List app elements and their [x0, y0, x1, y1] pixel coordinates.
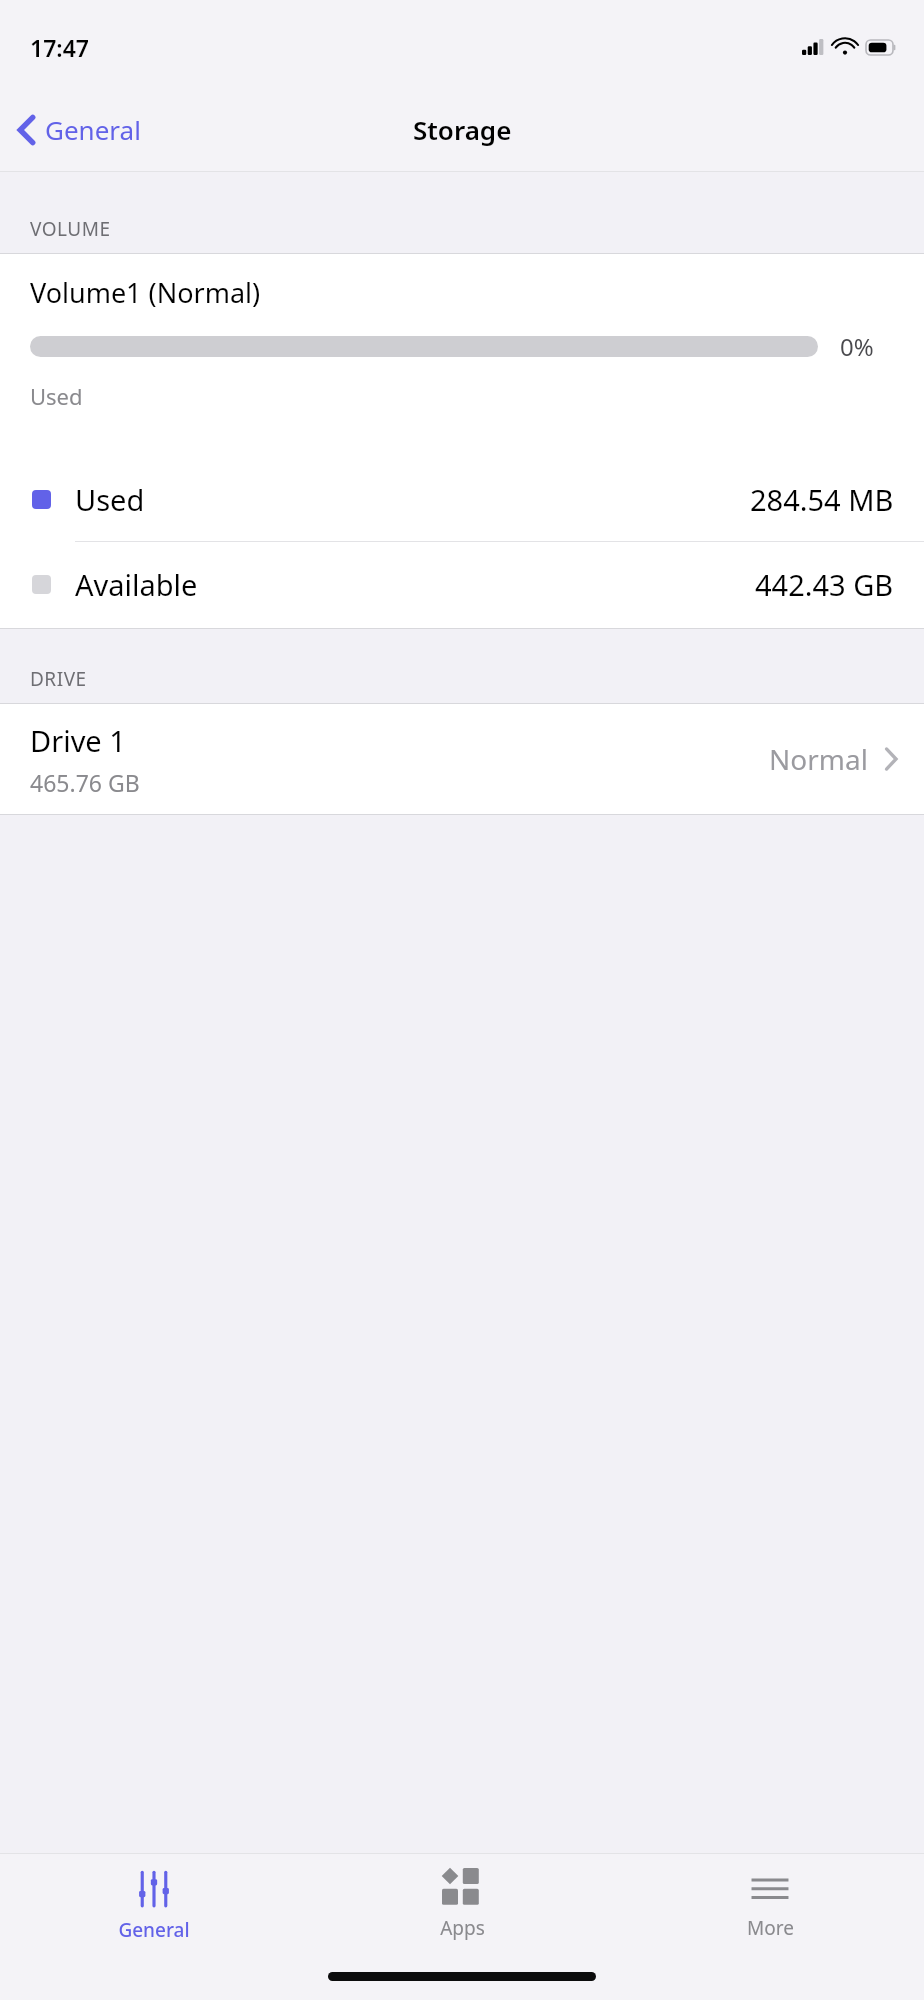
staticText: 465.76 GB: [30, 767, 140, 798]
staticText: Available: [75, 565, 198, 604]
staticText: Used: [75, 480, 145, 519]
staticText: More: [747, 1915, 794, 1941]
staticText: General: [45, 112, 141, 147]
staticText: Used: [30, 381, 83, 411]
staticText: DRIVE: [30, 666, 87, 692]
staticText: Apps: [440, 1915, 485, 1941]
staticText: Storage: [413, 112, 512, 147]
button[interactable]: General: [0, 1854, 308, 1958]
button[interactable]: Apps: [308, 1854, 616, 1958]
button[interactable]: Available: [0, 542, 924, 626]
other: More: [749, 1868, 791, 1908]
staticText: 284.54 MB: [750, 480, 894, 519]
button[interactable]: General: [0, 104, 155, 155]
staticText: Volume1 (Normal): [30, 274, 261, 311]
staticText: 442.43 GB: [755, 565, 894, 604]
button[interactable]: More: [616, 1854, 924, 1958]
button[interactable]: Drive 1: [0, 704, 924, 814]
staticText: Drive 1: [30, 721, 126, 760]
button[interactable]: Used: [0, 457, 924, 541]
staticText: 0%: [840, 330, 898, 363]
staticText: 17:47: [30, 32, 89, 63]
staticText: VOLUME: [30, 216, 111, 242]
staticText: Normal: [769, 740, 868, 778]
staticText: General: [118, 1917, 190, 1943]
